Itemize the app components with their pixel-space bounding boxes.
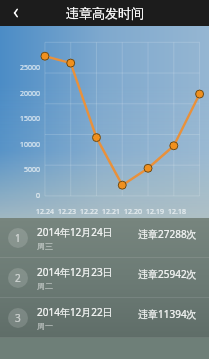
staticText: 12.22 — [80, 207, 98, 217]
staticText: 12.18 — [168, 207, 186, 217]
staticText: 周二 — [37, 281, 53, 291]
staticText: 2 — [15, 271, 21, 285]
staticText: 违章11394次 — [138, 307, 197, 321]
button[interactable]: 1 — [0, 218, 209, 257]
button[interactable]: Back — [0, 0, 32, 26]
staticText: 0 — [0, 191, 40, 201]
staticText: 25000 — [0, 63, 40, 73]
staticText: 2014年12月24日 — [37, 225, 113, 239]
staticText: 周一 — [37, 321, 53, 331]
staticText: 3 — [15, 311, 21, 325]
staticText: 12.20 — [124, 207, 142, 217]
staticText: 周三 — [37, 241, 53, 251]
staticText: 违章25942次 — [138, 267, 197, 281]
staticText: 12.23 — [58, 207, 76, 217]
staticText: 违章高发时间 — [66, 5, 144, 21]
staticText: 1 — [15, 231, 21, 245]
staticText: 2014年12月22日 — [37, 305, 113, 319]
staticText: 20000 — [0, 89, 40, 99]
staticText: 2014年12月23日 — [37, 265, 113, 279]
button[interactable]: 2 — [0, 258, 209, 297]
staticText: 5000 — [0, 165, 40, 175]
staticText: 10000 — [0, 140, 40, 150]
staticText: 12.24 — [36, 207, 54, 217]
button[interactable]: 3 — [0, 298, 209, 337]
staticText: 12.19 — [146, 207, 164, 217]
staticText: 15000 — [0, 114, 40, 124]
staticText: 违章27288次 — [138, 227, 197, 241]
staticText: 12.21 — [102, 207, 120, 217]
